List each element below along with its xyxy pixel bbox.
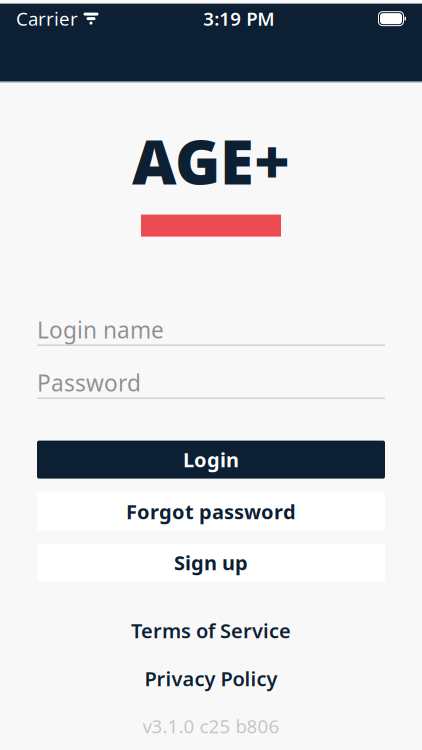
staticText: AGE+ [132,120,290,201]
staticText: 3:19 PM [203,6,274,31]
staticText: Terms of Service [131,617,291,644]
button[interactable]: Sign up [37,544,385,582]
staticText: Carrier [16,6,78,31]
staticText: Password [37,368,141,398]
staticText: Privacy Policy [144,665,277,692]
staticText: Sign up [174,549,248,576]
staticText: Login [183,446,239,473]
button[interactable]: Terms of Service [131,620,291,642]
button[interactable]: Privacy Policy [144,668,277,690]
button[interactable]: Login [37,441,385,479]
staticText: Login name [37,315,164,345]
button[interactable]: Forgot password [37,493,385,531]
staticText: Forgot password [126,498,296,525]
staticText: v3.1.0 c25 b806 [142,714,279,738]
